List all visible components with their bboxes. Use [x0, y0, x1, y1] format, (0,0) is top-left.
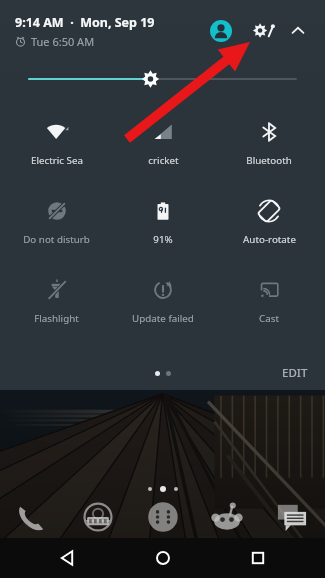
button[interactable]: Cast	[216, 258, 322, 337]
button[interactable]: Back	[38, 538, 96, 578]
staticText: EDIT	[282, 365, 308, 381]
button[interactable]: Electric Sea	[3, 100, 110, 179]
button[interactable]: User profile	[204, 14, 238, 48]
button[interactable]: 91%	[110, 179, 216, 258]
staticText: Cast	[259, 312, 279, 325]
button[interactable]: Do not disturb	[3, 179, 110, 258]
staticText: Do not disturb	[23, 233, 90, 246]
staticText: Auto-rotate	[243, 233, 296, 246]
staticText: Electric Sea	[31, 154, 83, 167]
staticText: 9:14 AM · Mon, Sep 19	[15, 14, 155, 31]
staticText: Update failed	[132, 312, 194, 325]
button[interactable]: Auto-rotate	[216, 179, 322, 258]
staticText: Flashlight	[34, 312, 79, 325]
button[interactable]: Recent apps	[229, 538, 287, 578]
button[interactable]: Browser	[75, 494, 121, 540]
button[interactable]: Phone	[10, 494, 56, 540]
button[interactable]: Update failed	[110, 258, 216, 337]
button[interactable]: Flashlight	[3, 258, 110, 337]
button[interactable]: Home	[134, 538, 192, 578]
staticText: cricket	[148, 154, 179, 167]
staticText: Tue 6:50 AM	[31, 34, 95, 49]
button[interactable]: Reddit	[204, 494, 250, 540]
staticText: Bluetooth	[246, 154, 292, 167]
staticText: 91%	[153, 233, 173, 246]
button[interactable]: All apps	[140, 494, 186, 540]
button[interactable]: Bluetooth	[216, 100, 322, 179]
button[interactable]: Brightness	[3, 62, 322, 96]
button[interactable]: EDIT	[268, 359, 322, 387]
button[interactable]: Settings	[244, 13, 280, 49]
button[interactable]: Messages	[269, 494, 315, 540]
button[interactable]: Collapse	[282, 15, 314, 47]
button[interactable]: cricket	[110, 100, 216, 179]
